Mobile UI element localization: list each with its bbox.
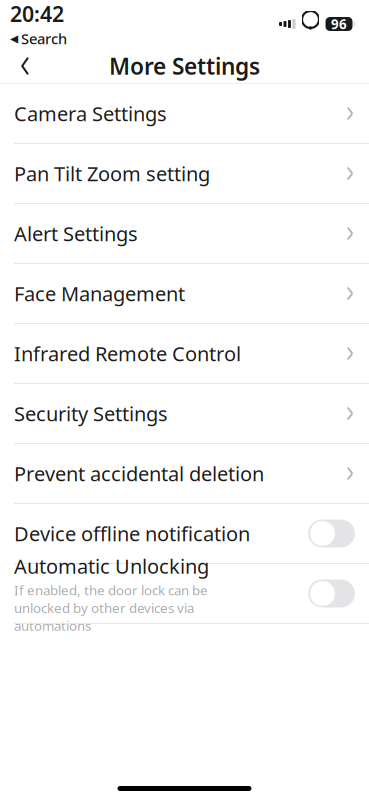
- staticText: Search: [21, 29, 67, 48]
- staticText: Pan Tilt Zoom setting: [14, 160, 210, 187]
- staticText: 96: [331, 15, 347, 33]
- button[interactable]: Device offline notification: [0, 504, 369, 563]
- staticText: Automatic Unlocking: [14, 553, 209, 579]
- button[interactable]: Security Settings: [0, 384, 369, 443]
- button[interactable]: Alert Settings: [0, 204, 369, 263]
- staticText: Alert Settings: [14, 220, 138, 247]
- staticText: Camera Settings: [14, 100, 167, 127]
- staticText: Security Settings: [14, 400, 168, 427]
- button[interactable]: Pan Tilt Zoom setting: [0, 144, 369, 203]
- staticText: ◀: [10, 33, 18, 45]
- staticText: 20:42: [10, 0, 64, 28]
- staticText: If enabled, the door lock can be unlocke…: [14, 581, 208, 634]
- button[interactable]: Face Management: [0, 264, 369, 323]
- button[interactable]: Infrared Remote Control: [0, 324, 369, 383]
- staticText: More Settings: [109, 51, 260, 81]
- button[interactable]: Prevent accidental deletion: [0, 444, 369, 503]
- staticText: Device offline notification: [14, 520, 250, 547]
- staticText: Infrared Remote Control: [14, 340, 241, 367]
- button[interactable]: Camera Settings: [0, 84, 369, 143]
- button[interactable]: Back: [3, 48, 47, 84]
- staticText: Face Management: [14, 280, 185, 307]
- button[interactable]: Automatic Unlocking: [0, 564, 369, 623]
- staticText: Prevent accidental deletion: [14, 460, 264, 487]
